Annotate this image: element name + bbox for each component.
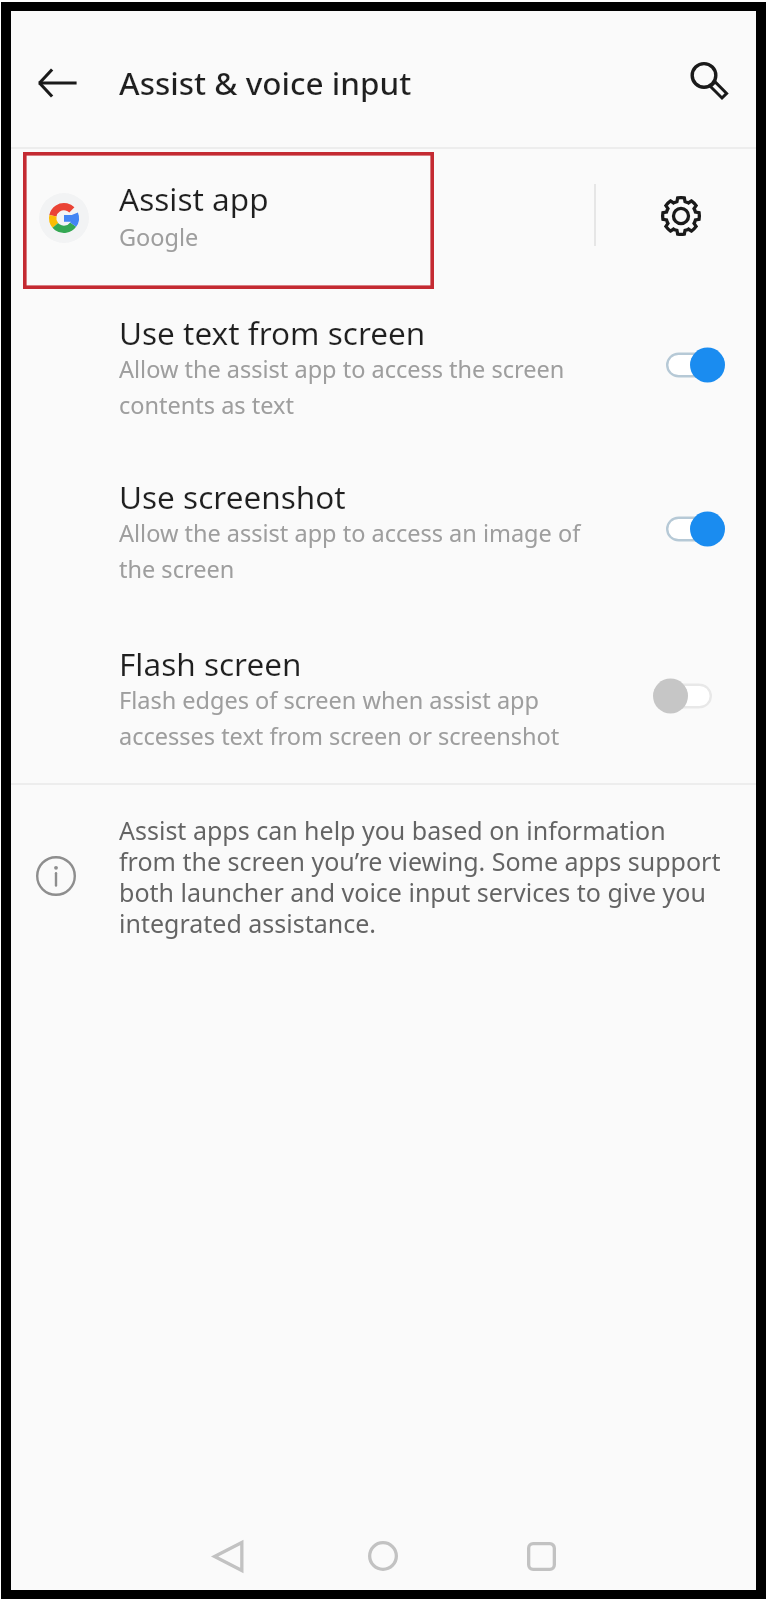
staticText: Assist app <box>119 177 269 220</box>
button[interactable]: Search <box>678 51 738 111</box>
staticText: Use text from screen <box>119 311 426 354</box>
staticText: the screen <box>119 553 235 585</box>
staticText: Flash edges of screen when assist app <box>119 684 540 716</box>
staticText: Allow the assist app to access the scree… <box>119 353 565 385</box>
staticText: Use screenshot <box>119 475 346 518</box>
staticText: contents as text <box>119 389 294 421</box>
button[interactable]: Recent apps <box>507 1522 575 1590</box>
staticText: accesses text from screen or screenshot <box>119 720 560 752</box>
button[interactable]: Navigate up <box>26 59 88 121</box>
staticText: Allow the assist app to access an image … <box>119 517 581 549</box>
staticText: Assist & voice input <box>119 61 412 104</box>
staticText: Flash screen <box>119 642 302 685</box>
staticText: Assist apps can help you based on inform… <box>119 816 725 940</box>
button[interactable]: Use screenshot <box>11 467 756 627</box>
button[interactable]: Assist app settings <box>656 191 706 241</box>
button[interactable]: Assist app <box>11 141 756 289</box>
button[interactable]: Home <box>349 1522 417 1590</box>
staticText: Google <box>119 221 199 253</box>
button[interactable]: Use text from screen <box>11 303 756 463</box>
button[interactable]: Back <box>194 1522 262 1590</box>
button[interactable]: Flash screen <box>11 634 756 794</box>
